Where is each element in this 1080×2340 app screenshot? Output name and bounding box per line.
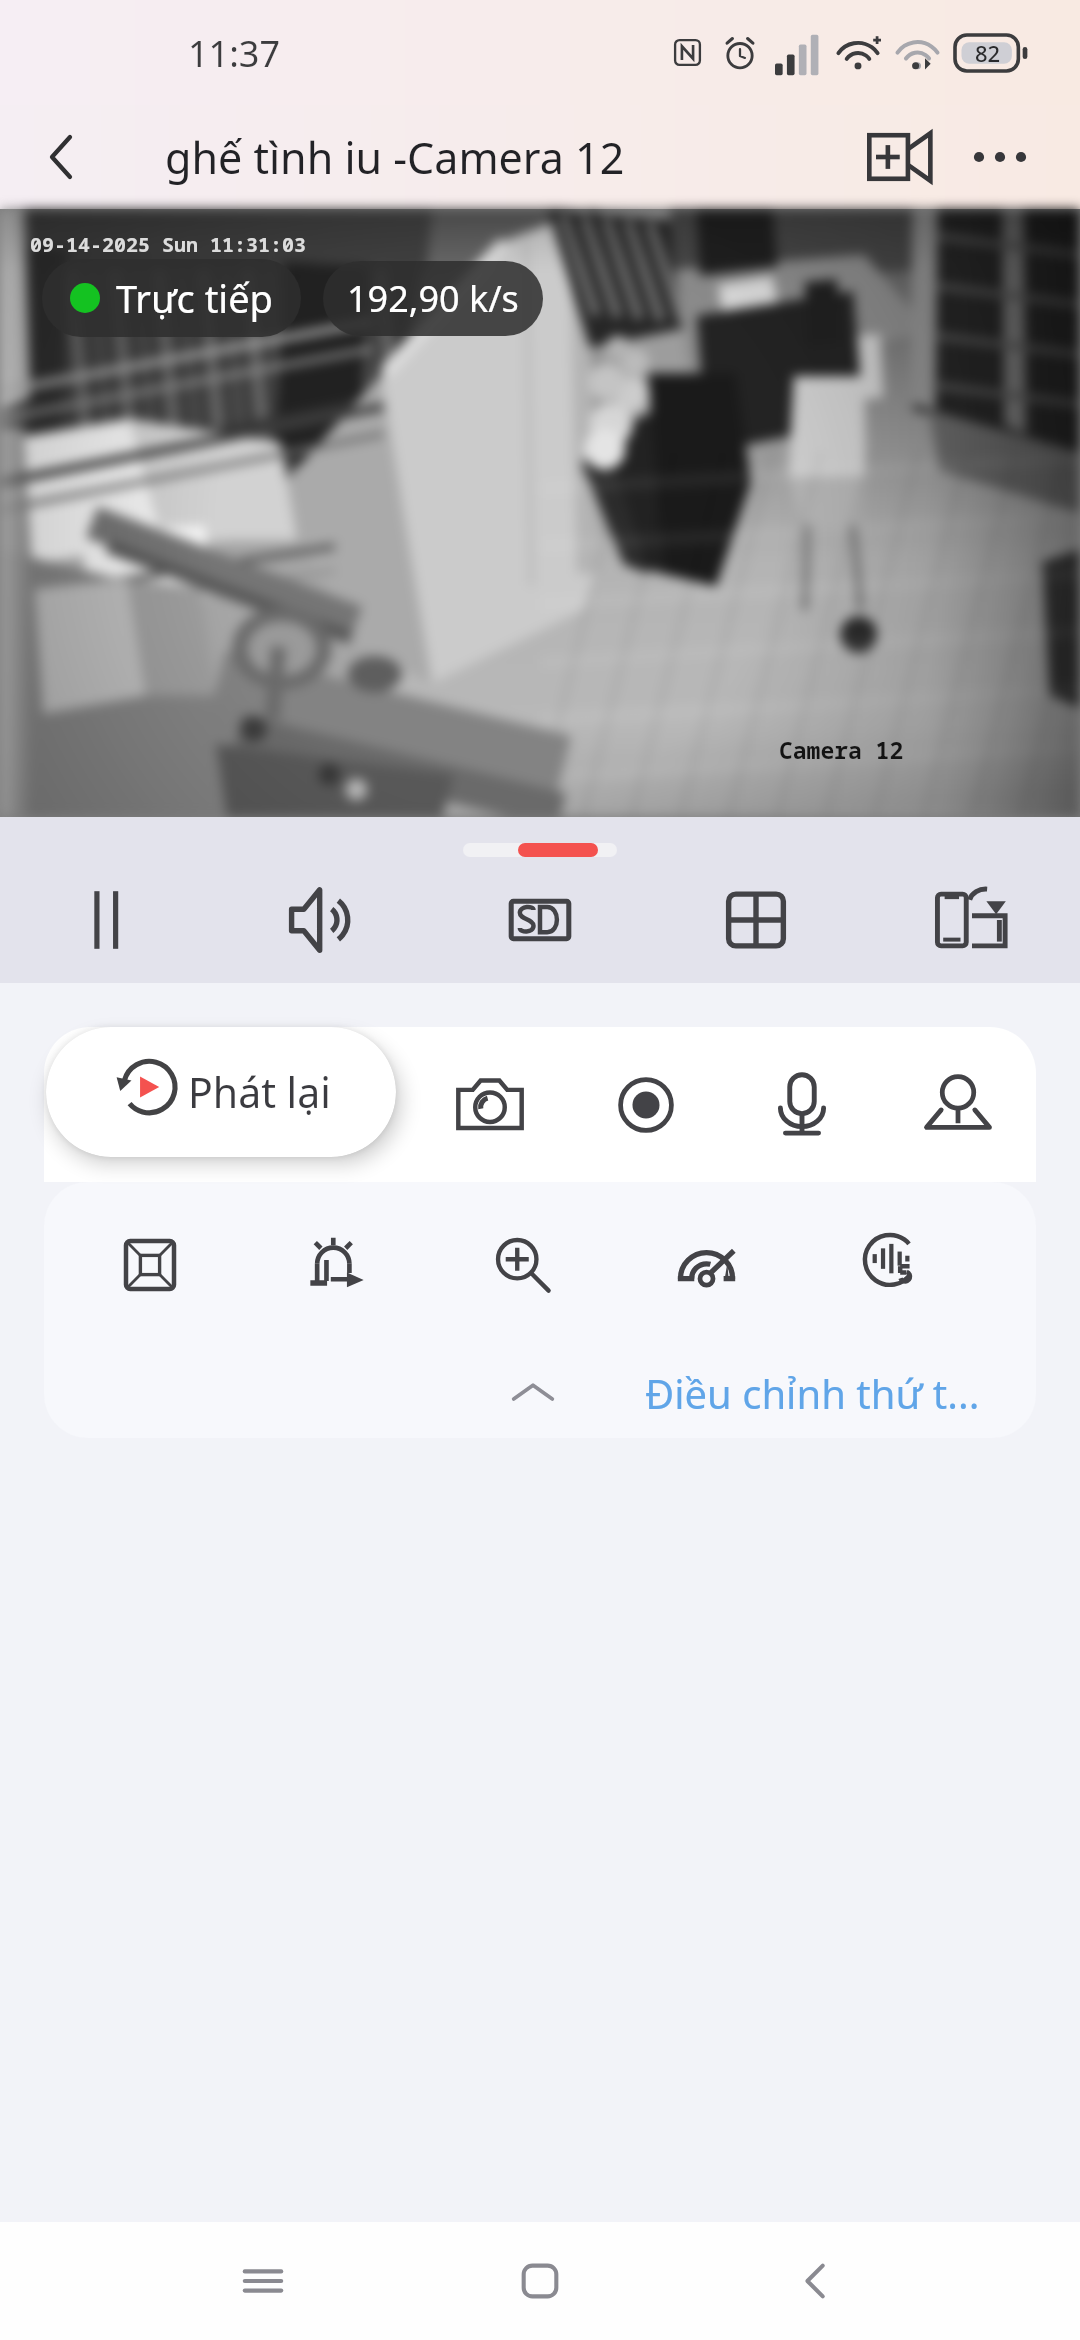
staticText: 09-14-2025 Sun 11:31:03 [30,231,306,258]
button[interactable]: Collapse [497,1357,569,1429]
button[interactable]: Snapshot [412,1027,568,1182]
staticText: 192,90 k/s [347,274,519,323]
button[interactable]: 192,90 k/s [323,261,543,336]
staticText: Camera 12 [779,734,904,765]
button[interactable]: Trực tiếp [42,259,301,337]
button[interactable]: Phát lại [46,1027,396,1157]
staticText: Điều chỉnh thứ t... [645,1366,980,1420]
button[interactable]: Preset position [880,1027,1036,1182]
button[interactable]: Back [762,2226,872,2336]
button[interactable]: Add camera [848,105,952,209]
button[interactable]: Audio level 5 [802,1182,988,1348]
button[interactable]: Siren [243,1182,430,1348]
button[interactable]: Back [20,115,104,199]
staticText: Phát lại [188,1064,331,1120]
button[interactable]: Two way talk [724,1027,880,1182]
button[interactable]: Quality SD [432,857,648,983]
button[interactable]: Rotate screen [864,857,1080,983]
staticText: Trực tiếp [116,272,273,324]
button[interactable]: Pause [0,857,216,983]
staticText: 82 [975,38,1001,68]
button[interactable]: Điều chỉnh thứ t... [645,1356,980,1430]
button[interactable]: Record [568,1027,724,1182]
button[interactable]: Bitrate [616,1182,802,1348]
button[interactable]: Volume [216,857,432,983]
button[interactable]: Home [485,2226,595,2336]
staticText: ghế tình iu -Camera 12 [165,128,625,187]
staticText: 11:37 [188,29,281,78]
button[interactable]: Recents [208,2226,318,2336]
button[interactable]: More options [952,109,1048,205]
button[interactable]: Split view [648,857,864,983]
button[interactable]: Digital zoom [430,1182,616,1348]
button[interactable]: Fisheye view [56,1182,243,1348]
